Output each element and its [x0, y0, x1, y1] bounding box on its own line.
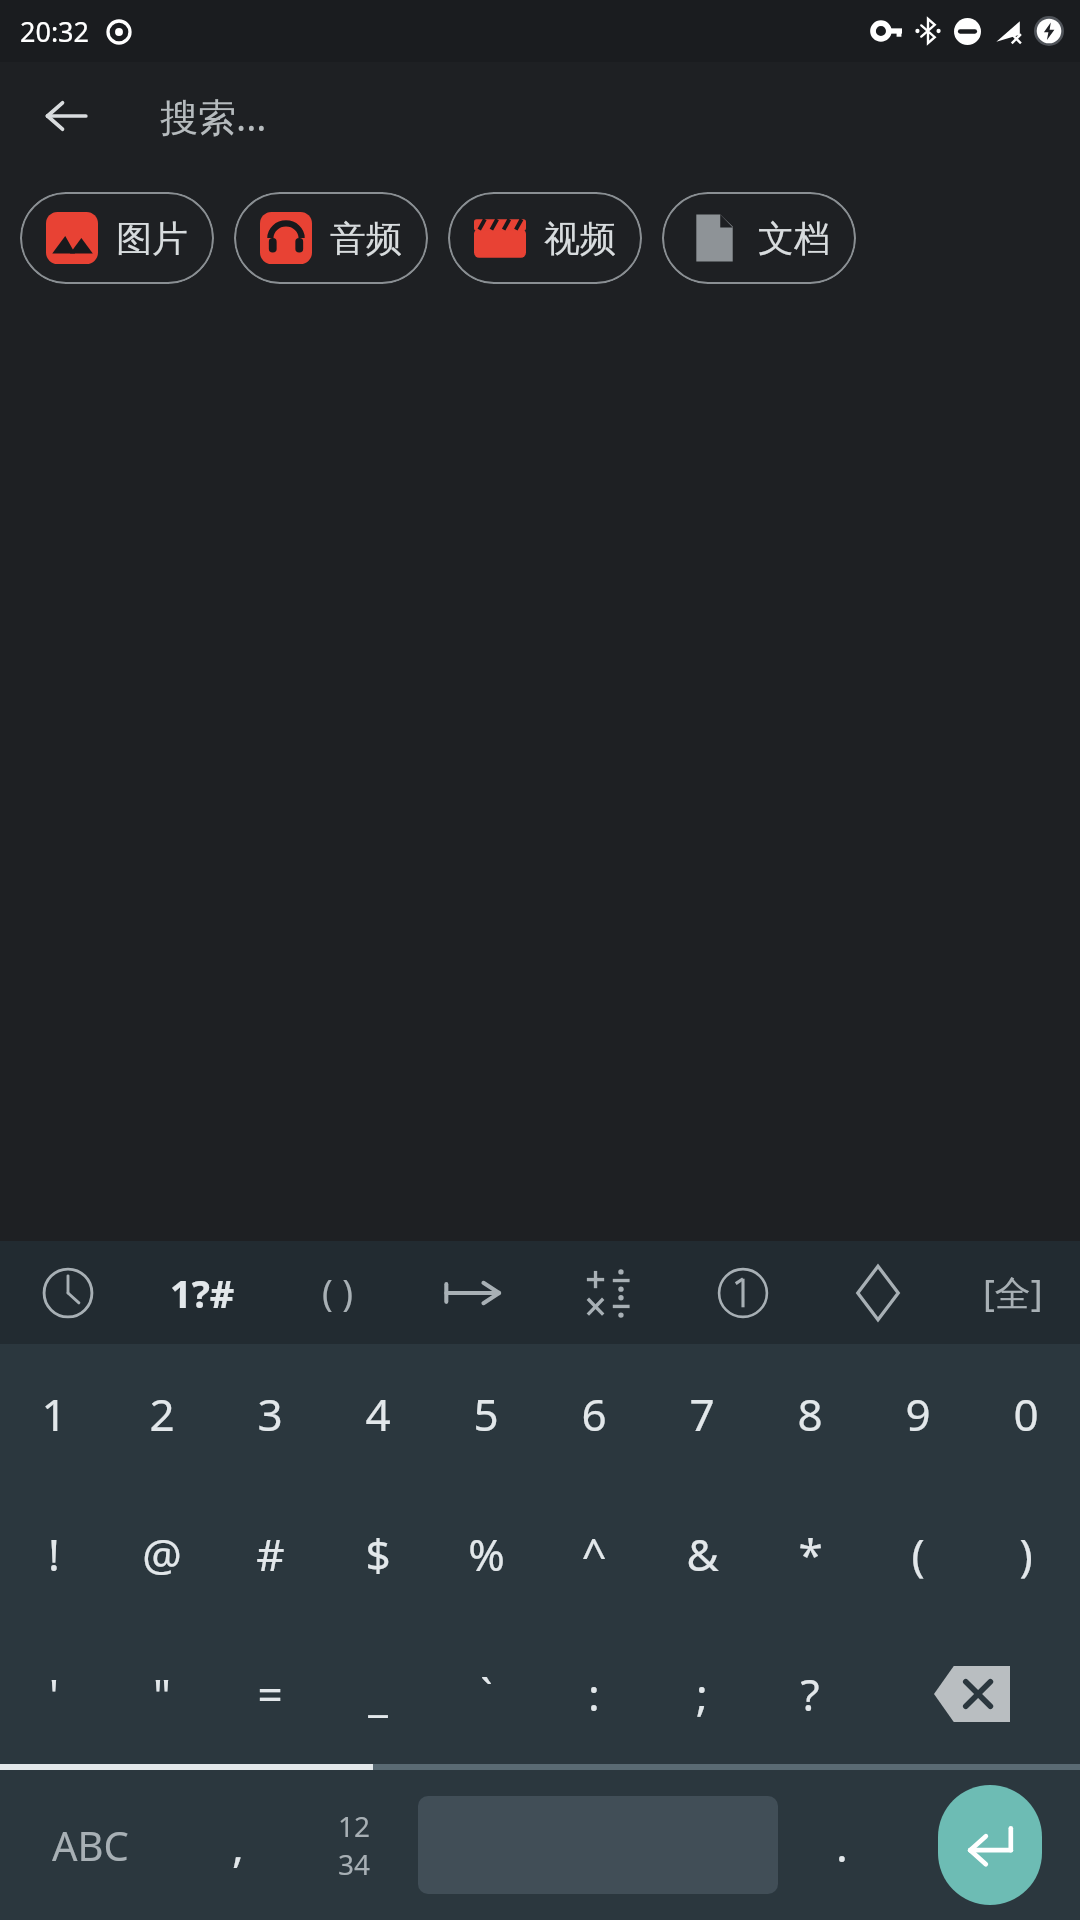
button[interactable]: :: [540, 1624, 648, 1764]
staticText: ): [1019, 1524, 1033, 1584]
staticText: ': [49, 1664, 59, 1724]
staticText: 0: [1013, 1384, 1039, 1444]
staticText: 20:32: [20, 13, 90, 50]
button[interactable]: Backspace: [864, 1624, 1080, 1764]
staticText: ?: [800, 1664, 820, 1724]
button[interactable]: 图片: [20, 192, 214, 284]
button[interactable]: Math symbols: [540, 1241, 675, 1344]
button[interactable]: Numbered symbols: [675, 1241, 810, 1344]
staticText: 9: [905, 1384, 931, 1444]
staticText: 图片: [116, 216, 188, 261]
button[interactable]: &: [648, 1484, 756, 1624]
staticText: 12: [338, 1807, 371, 1845]
button[interactable]: 文档: [662, 192, 856, 284]
staticText: 文档: [758, 216, 830, 261]
button[interactable]: ": [108, 1624, 216, 1764]
button[interactable]: ( ): [270, 1241, 405, 1344]
button[interactable]: Recent: [0, 1241, 135, 1344]
staticText: `: [480, 1664, 493, 1724]
button[interactable]: 3: [216, 1344, 324, 1484]
button[interactable]: 6: [540, 1344, 648, 1484]
button[interactable]: (: [864, 1484, 972, 1624]
other: Math symbols: [584, 1269, 632, 1317]
other: Numbered symbols: [717, 1267, 769, 1319]
staticText: [全]: [983, 1268, 1043, 1317]
staticText: 2: [149, 1384, 175, 1444]
button[interactable]: ,: [180, 1770, 296, 1920]
button[interactable]: ABC: [0, 1770, 180, 1920]
staticText: _: [368, 1664, 388, 1724]
button[interactable]: 8: [756, 1344, 864, 1484]
staticText: @: [142, 1524, 182, 1584]
button[interactable]: @: [108, 1484, 216, 1624]
staticText: *: [798, 1524, 823, 1584]
staticText: ,: [232, 1815, 244, 1875]
staticText: !: [48, 1524, 60, 1584]
button[interactable]: 4: [324, 1344, 432, 1484]
button[interactable]: 7: [648, 1344, 756, 1484]
staticText: ": [153, 1664, 171, 1724]
button[interactable]: `: [432, 1624, 540, 1764]
other: Recent: [42, 1267, 94, 1319]
button[interactable]: ': [0, 1624, 108, 1764]
other: Shapes: [856, 1264, 900, 1322]
button[interactable]: !: [0, 1484, 108, 1624]
staticText: 4: [365, 1384, 391, 1444]
staticText: 8: [797, 1384, 823, 1444]
button[interactable]: =: [216, 1624, 324, 1764]
button[interactable]: 9: [864, 1344, 972, 1484]
button[interactable]: 1?#: [135, 1241, 270, 1344]
button[interactable]: 0: [972, 1344, 1080, 1484]
staticText: .: [836, 1815, 848, 1875]
button[interactable]: Enter: [938, 1785, 1042, 1905]
staticText: =: [257, 1664, 283, 1724]
staticText: 1?#: [170, 1267, 235, 1319]
staticText: 搜索...: [160, 90, 267, 142]
button[interactable]: Back: [24, 74, 108, 158]
button[interactable]: 1: [0, 1344, 108, 1484]
staticText: ^: [581, 1524, 607, 1584]
staticText: (: [911, 1524, 925, 1584]
button[interactable]: ): [972, 1484, 1080, 1624]
button[interactable]: ;: [648, 1624, 756, 1764]
staticText: %: [468, 1524, 505, 1584]
staticText: 7: [689, 1384, 715, 1444]
button[interactable]: %: [432, 1484, 540, 1624]
button[interactable]: 2: [108, 1344, 216, 1484]
button[interactable]: 12: [296, 1770, 412, 1920]
button[interactable]: #: [216, 1484, 324, 1624]
staticText: #: [256, 1524, 285, 1584]
button[interactable]: 音频: [234, 192, 428, 284]
staticText: 视频: [544, 216, 616, 261]
button[interactable]: [全]: [945, 1241, 1080, 1344]
button[interactable]: ?: [756, 1624, 864, 1764]
button[interactable]: 5: [432, 1344, 540, 1484]
button[interactable]: Tab: [405, 1241, 540, 1344]
staticText: 3: [257, 1384, 283, 1444]
button[interactable]: $: [324, 1484, 432, 1624]
staticText: &: [686, 1524, 719, 1584]
button[interactable]: Shapes: [810, 1241, 945, 1344]
button[interactable]: 视频: [448, 192, 642, 284]
staticText: 34: [338, 1845, 371, 1883]
staticText: ABC: [52, 1818, 129, 1872]
staticText: 5: [473, 1384, 499, 1444]
staticText: 音频: [330, 216, 402, 261]
staticText: 1: [41, 1384, 67, 1444]
button[interactable]: ^: [540, 1484, 648, 1624]
staticText: $: [365, 1524, 391, 1584]
button[interactable]: _: [324, 1624, 432, 1764]
staticText: :: [588, 1664, 600, 1724]
staticText: ( ): [322, 1268, 353, 1317]
button[interactable]: .: [784, 1770, 900, 1920]
other: Tab: [444, 1276, 502, 1310]
staticText: ;: [696, 1664, 708, 1724]
button[interactable]: *: [756, 1484, 864, 1624]
staticText: 6: [581, 1384, 607, 1444]
